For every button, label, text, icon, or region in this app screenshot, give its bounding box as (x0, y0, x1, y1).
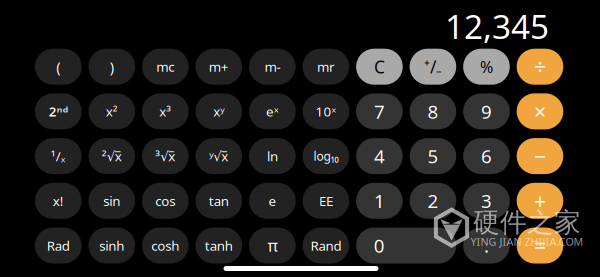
button[interactable]: ( (35, 49, 82, 85)
button[interactable]: 7 (356, 93, 403, 129)
staticText: . (484, 233, 489, 258)
staticText: Rand (310, 237, 341, 254)
button[interactable]: tan (196, 183, 242, 219)
button[interactable]: C (356, 49, 403, 85)
button[interactable]: ʸ√x̅ (196, 138, 242, 174)
staticText: 2 (427, 188, 438, 213)
button[interactable]: cosh (142, 227, 189, 263)
button[interactable]: 8 (410, 93, 456, 129)
button[interactable]: 9 (463, 93, 510, 129)
button[interactable]: ³√x̅ (142, 138, 189, 174)
button[interactable]: m- (249, 49, 296, 85)
button[interactable]: log₁₀ (303, 138, 349, 174)
button[interactable]: 10ˣ (303, 93, 349, 129)
button[interactable]: . (463, 227, 510, 263)
button[interactable]: ln (249, 138, 296, 174)
staticText: xʸ (213, 102, 224, 120)
staticText: ¹/ₓ (51, 147, 66, 165)
staticText: ( (56, 57, 60, 76)
staticText: 6 (481, 144, 492, 168)
button[interactable]: tanh (196, 227, 242, 263)
button[interactable]: 6 (463, 138, 510, 174)
staticText: sinh (99, 237, 124, 254)
button[interactable]: × (517, 93, 563, 129)
button[interactable]: sin (88, 183, 135, 219)
button[interactable]: EE (303, 183, 349, 219)
staticText: cosh (151, 237, 179, 254)
button[interactable]: x² (88, 93, 135, 129)
button[interactable]: 4 (356, 138, 403, 174)
staticText: m- (264, 58, 280, 75)
button[interactable]: x! (35, 183, 82, 219)
staticText: cos (155, 192, 175, 210)
staticText: mr (317, 58, 335, 75)
staticText: C (374, 55, 385, 78)
button[interactable]: π (249, 227, 296, 263)
staticText: 12,345 (445, 4, 549, 48)
staticText: log₁₀ (313, 148, 338, 164)
staticText: π (267, 235, 277, 256)
button[interactable]: ²√x̅ (88, 138, 135, 174)
staticText: mc (156, 58, 174, 75)
button[interactable]: sinh (88, 227, 135, 263)
staticText: ³√x̅ (155, 147, 175, 165)
button[interactable]: 5 (410, 138, 456, 174)
staticText: 2ⁿᵈ (49, 102, 68, 120)
button[interactable]: 0 (356, 227, 456, 263)
staticText: 3 (481, 188, 492, 213)
button[interactable]: % (463, 49, 510, 85)
button[interactable]: + (517, 183, 563, 219)
button[interactable]: ⁺/₋ (410, 49, 456, 85)
button[interactable]: ¹/ₓ (35, 138, 82, 174)
button[interactable]: e (249, 183, 296, 219)
staticText: + (534, 187, 546, 215)
button[interactable]: cos (142, 183, 189, 219)
staticText: 10ˣ (315, 102, 336, 120)
staticText: × (534, 97, 546, 125)
button[interactable]: − (517, 138, 563, 174)
staticText: ʸ√x̅ (209, 147, 228, 165)
button[interactable]: Rand (303, 227, 349, 263)
button[interactable]: xʸ (196, 93, 242, 129)
button[interactable]: 2ⁿᵈ (35, 93, 82, 129)
staticText: 8 (427, 99, 438, 124)
staticText: ⁺/₋ (424, 55, 442, 78)
staticText: sin (103, 192, 120, 210)
staticText: 9 (481, 99, 492, 124)
staticText: 1 (374, 188, 385, 213)
button[interactable]: m+ (196, 49, 242, 85)
button[interactable]: mr (303, 49, 349, 85)
button[interactable]: 2 (410, 183, 456, 219)
staticText: % (480, 56, 493, 77)
staticText: 硬件之家 (473, 206, 581, 239)
staticText: ÷ (534, 52, 546, 81)
staticText: 4 (374, 144, 385, 168)
staticText: m+ (209, 58, 229, 75)
staticText: eˣ (266, 102, 279, 120)
staticText: − (534, 142, 546, 170)
button[interactable]: x³ (142, 93, 189, 129)
staticText: ln (267, 147, 278, 165)
button[interactable]: ÷ (517, 49, 563, 85)
staticText: 7 (374, 99, 385, 124)
staticText: e (268, 192, 276, 210)
button[interactable]: = (517, 227, 563, 263)
button[interactable]: 3 (463, 183, 510, 219)
button[interactable]: ) (88, 49, 135, 85)
button[interactable]: eˣ (249, 93, 296, 129)
staticText: EE (319, 192, 333, 210)
staticText: 5 (427, 144, 438, 168)
staticText: tanh (205, 237, 233, 254)
button[interactable]: 1 (356, 183, 403, 219)
staticText: ) (110, 57, 114, 76)
button[interactable]: Rad (35, 227, 82, 263)
staticText: 0 (374, 233, 385, 258)
staticText: Rad (47, 237, 70, 254)
button[interactable]: mc (142, 49, 189, 85)
staticText: x! (53, 192, 64, 210)
staticText: = (534, 231, 546, 260)
staticText: YING JIAN ZHIJIA.COM (470, 234, 583, 249)
staticText: x² (106, 102, 118, 120)
staticText: tan (209, 192, 229, 210)
staticText: x³ (159, 102, 171, 120)
